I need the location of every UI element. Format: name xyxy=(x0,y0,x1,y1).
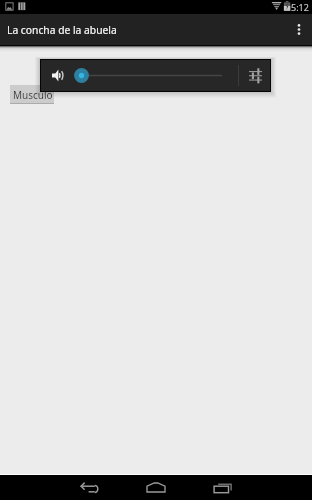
button[interactable]: Recent apps xyxy=(195,475,250,500)
button[interactable]: Home xyxy=(128,475,183,500)
staticText: La concha de la abuela xyxy=(7,23,117,37)
staticText: 5:12 xyxy=(291,1,309,13)
button[interactable]: Volume slider xyxy=(71,60,223,91)
button[interactable]: Sound settings xyxy=(241,60,269,91)
button[interactable]: Musculo xyxy=(10,85,54,104)
staticText: Musculo xyxy=(13,88,53,102)
button[interactable]: Mute volume xyxy=(46,60,69,91)
button[interactable]: Back xyxy=(62,475,117,500)
button[interactable]: More options xyxy=(286,14,312,45)
